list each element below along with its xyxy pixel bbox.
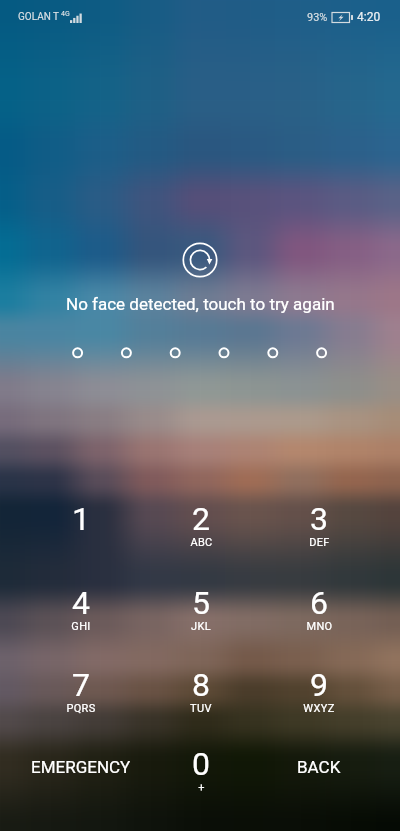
- button[interactable]: 8: [142, 651, 260, 729]
- staticText: WXYZ: [303, 702, 335, 715]
- button[interactable]: 1: [22, 485, 140, 563]
- staticText: TUV: [190, 702, 212, 715]
- staticText: 5: [192, 584, 210, 622]
- staticText: 4:20: [357, 10, 381, 24]
- staticText: 0: [192, 745, 210, 783]
- button[interactable]: 2: [142, 485, 260, 563]
- button[interactable]: 4: [22, 569, 140, 647]
- staticText: GHI: [71, 620, 91, 633]
- staticText: +: [198, 781, 205, 794]
- staticText: 9: [310, 666, 328, 704]
- button[interactable]: 7: [22, 651, 140, 729]
- staticText: 1: [72, 500, 90, 538]
- staticText: ABC: [190, 536, 213, 549]
- staticText: 93%: [307, 11, 328, 24]
- staticText: MNO: [306, 620, 333, 633]
- button[interactable]: 3: [260, 485, 378, 563]
- button[interactable]: BACK: [260, 730, 378, 808]
- button[interactable]: 5: [142, 569, 260, 647]
- staticText: BACK: [297, 757, 341, 777]
- staticText: No face detected, touch to try again: [66, 294, 335, 314]
- staticText: JKL: [191, 620, 211, 633]
- staticText: 2: [192, 500, 210, 538]
- button[interactable]: No face detected, touch to try again: [0, 294, 400, 314]
- button[interactable]: 0: [142, 730, 260, 808]
- button[interactable]: EMERGENCY: [22, 730, 140, 808]
- staticText: EMERGENCY: [31, 757, 131, 777]
- staticText: 8: [192, 666, 210, 704]
- staticText: GOLAN T: [18, 11, 60, 23]
- button[interactable]: 6: [260, 569, 378, 647]
- button[interactable]: Retry face unlock: [180, 240, 220, 280]
- staticText: 4: [72, 584, 90, 622]
- staticText: 3: [310, 500, 328, 538]
- staticText: DEF: [309, 536, 330, 549]
- staticText: 6: [310, 584, 328, 622]
- staticText: 7: [72, 666, 90, 704]
- staticText: PQRS: [66, 702, 96, 715]
- staticText: 4G: [61, 10, 70, 18]
- button[interactable]: 9: [260, 651, 378, 729]
